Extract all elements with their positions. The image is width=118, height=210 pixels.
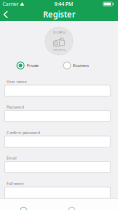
button[interactable]: User name: [5, 85, 110, 96]
button[interactable]: Email: [5, 161, 110, 173]
button[interactable]: Business: [63, 62, 89, 69]
staticText: Full name: [6, 181, 23, 186]
button[interactable]: Full name: [5, 187, 110, 198]
button[interactable]: Profile: [68, 198, 75, 210]
button[interactable]: Back: [0, 8, 13, 21]
staticText: 9:44 PM: [54, 0, 73, 8]
staticText: Email: [6, 155, 16, 161]
staticText: User name: [6, 79, 26, 84]
staticText: Private: [26, 63, 38, 68]
button[interactable]: Add profile photo: [45, 27, 73, 55]
staticText: Register: [43, 9, 75, 20]
staticText: Carrier: [2, 0, 18, 8]
staticText: AVAILABLE: [52, 48, 65, 51]
button[interactable]: Password: [5, 110, 110, 122]
staticText: NO IMAGE: [52, 31, 65, 34]
button[interactable]: Confirm password: [5, 136, 110, 147]
staticText: Password: [6, 104, 23, 110]
staticText: Business: [73, 63, 89, 68]
staticText: Confirm password: [6, 130, 39, 135]
button[interactable]: Private: [17, 62, 38, 69]
button[interactable]: Home: [20, 198, 27, 210]
